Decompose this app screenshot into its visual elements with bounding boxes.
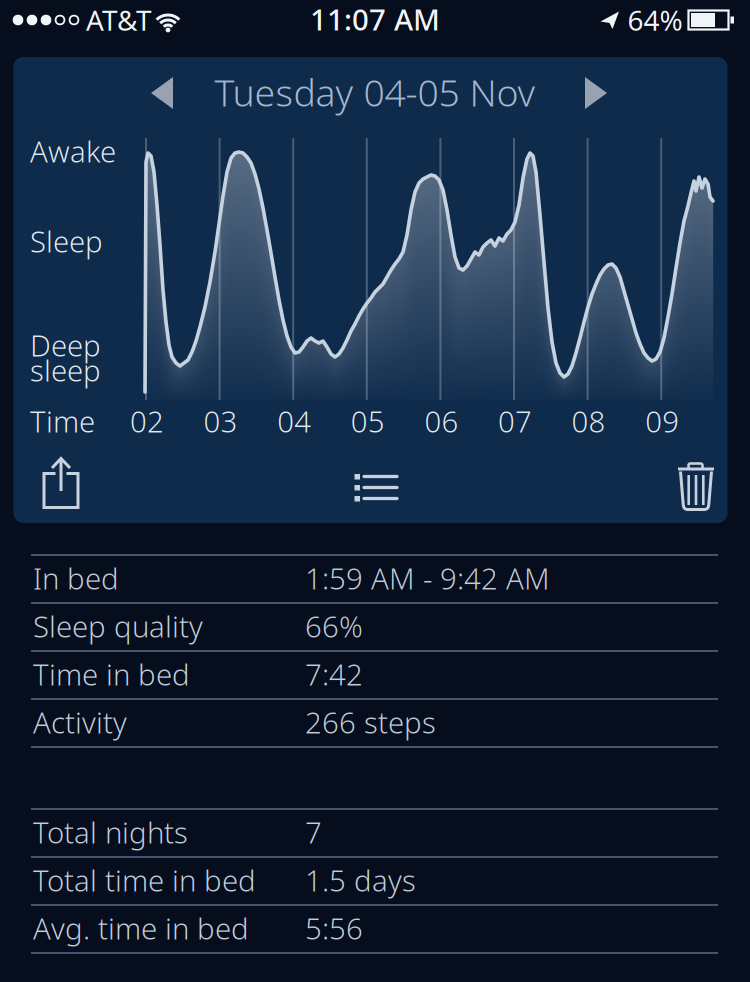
- staticText: 05: [351, 401, 385, 440]
- staticText: 5:56: [305, 908, 363, 947]
- staticText: Total time in bed: [33, 860, 256, 899]
- staticText: Sleep: [30, 221, 103, 260]
- button[interactable]: [149, 75, 175, 111]
- staticText: Time: [30, 401, 95, 440]
- staticText: 06: [424, 401, 458, 440]
- staticText: 07: [498, 401, 532, 440]
- staticText: Avg. time in bed: [33, 908, 249, 947]
- staticText: Sleep quality: [33, 606, 203, 645]
- staticText: 64%: [627, 1, 682, 39]
- staticText: In bed: [33, 558, 119, 597]
- staticText: Deep: [30, 325, 101, 364]
- staticText: 1:59 AM - 9:42 AM: [305, 558, 550, 597]
- staticText: sleep: [30, 350, 101, 389]
- staticText: Tuesday 04-05 Nov: [214, 67, 535, 117]
- staticText: 04: [277, 401, 311, 440]
- staticText: Activity: [33, 702, 127, 741]
- staticText: 03: [204, 401, 238, 440]
- button[interactable]: [674, 458, 718, 514]
- button[interactable]: [583, 75, 609, 111]
- staticText: Time in bed: [33, 654, 190, 693]
- staticText: 08: [572, 401, 606, 440]
- staticText: 7:42: [305, 654, 363, 693]
- staticText: 266 steps: [305, 702, 436, 741]
- staticText: 7: [305, 812, 322, 851]
- button[interactable]: [41, 455, 85, 513]
- staticText: 11:07 AM: [310, 0, 440, 38]
- staticText: 02: [130, 401, 164, 440]
- staticText: Awake: [30, 131, 116, 170]
- staticText: 66%: [305, 606, 363, 645]
- staticText: 09: [645, 401, 679, 440]
- staticText: 1.5 days: [305, 860, 416, 899]
- button[interactable]: [352, 471, 400, 503]
- staticText: AT&T: [86, 1, 152, 39]
- staticText: Total nights: [33, 812, 188, 851]
